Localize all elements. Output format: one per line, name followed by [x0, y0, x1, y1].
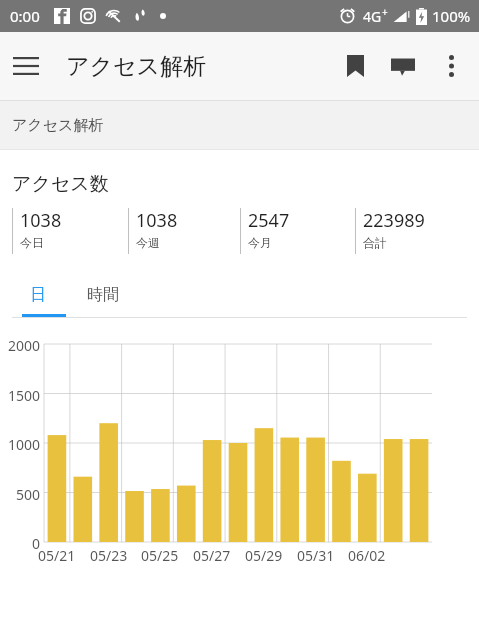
staticText: 今週: [136, 235, 160, 250]
staticText: 1500: [7, 386, 40, 405]
staticText: 4G: [363, 7, 382, 26]
staticText: 100%: [432, 6, 471, 26]
staticText: 時間: [87, 285, 119, 305]
staticText: 2000: [7, 336, 40, 355]
staticText: 05/27: [193, 546, 231, 565]
staticText: 1038: [136, 208, 178, 233]
staticText: 0: [31, 534, 40, 553]
staticText: 05/25: [141, 546, 179, 565]
staticText: 0:00: [10, 6, 40, 26]
staticText: 06/02: [348, 546, 386, 565]
staticText: 05/29: [245, 546, 283, 565]
staticText: 今月: [248, 235, 272, 250]
staticText: 223989: [363, 208, 425, 233]
staticText: 合計: [363, 235, 387, 250]
staticText: 500: [15, 485, 40, 504]
staticText: 05/23: [90, 546, 128, 565]
staticText: 日: [30, 285, 46, 305]
staticText: 05/21: [38, 546, 76, 565]
staticText: 1000: [7, 435, 40, 454]
staticText: 1038: [20, 208, 62, 233]
button[interactable]: Bookmark: [331, 42, 379, 90]
button[interactable]: Menu: [0, 40, 52, 92]
staticText: アクセス数: [12, 172, 109, 196]
staticText: 05/31: [297, 546, 335, 565]
staticText: 2547: [248, 208, 290, 233]
staticText: 今日: [20, 235, 44, 250]
button[interactable]: More options: [427, 42, 475, 90]
staticText: +: [382, 5, 388, 19]
button[interactable]: 時間: [68, 276, 138, 314]
staticText: アクセス解析: [12, 116, 104, 135]
staticText: アクセス解析: [66, 52, 207, 81]
button[interactable]: 日: [10, 276, 66, 314]
button[interactable]: Comments: [379, 42, 427, 90]
